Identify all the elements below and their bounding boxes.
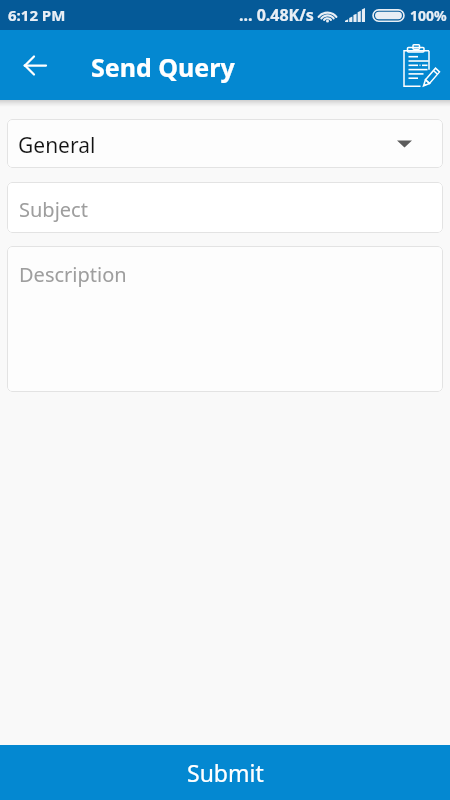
staticText: Submit: [187, 757, 264, 788]
button[interactable]: Description: [7, 246, 443, 392]
button[interactable]: Back: [11, 41, 59, 89]
staticText: ... 0.48K/s: [239, 4, 314, 26]
staticText: Send Query: [91, 50, 235, 84]
staticText: Description: [19, 261, 127, 288]
button[interactable]: General: [7, 119, 443, 168]
staticText: 100%: [410, 6, 447, 25]
button[interactable]: Subject: [7, 182, 443, 233]
button[interactable]: Submit: [0, 745, 450, 800]
staticText: Subject: [19, 196, 88, 223]
staticText: General: [18, 131, 96, 160]
staticText: 6:12 PM: [8, 5, 66, 25]
button[interactable]: My queries: [394, 39, 446, 91]
